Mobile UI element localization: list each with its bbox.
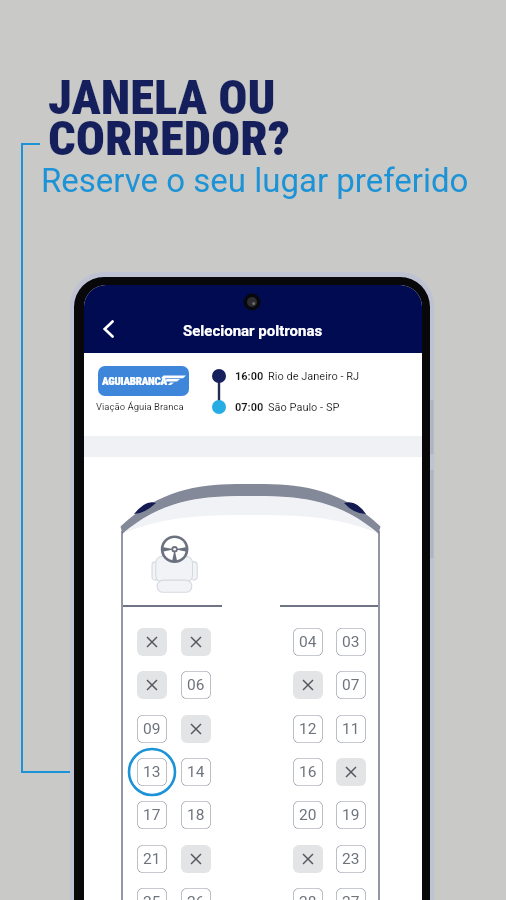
button[interactable]: 13 [137,758,167,786]
staticText: 16 [299,763,317,781]
button[interactable]: 14 [181,758,211,786]
staticText: 28 [299,893,317,900]
button[interactable]: 07 [336,671,366,699]
button[interactable]: 20 [293,801,323,829]
button[interactable]: 27 [336,888,366,900]
button[interactable]: 12 [293,715,323,743]
staticText: 26 [187,893,205,900]
staticText: Selecionar poltronas [183,322,323,340]
staticText: 04 [299,633,317,651]
staticText: 06 [187,676,205,694]
staticText: 13 [143,763,161,781]
button[interactable]: 04 [293,628,323,656]
button[interactable]: Poltrona indisponível [293,845,323,873]
staticText: Viação Águia Branca [96,401,184,412]
staticText: 07:00 [235,401,264,414]
staticText: 03 [342,633,360,651]
button[interactable]: Poltrona indisponível [293,671,323,699]
button[interactable]: 28 [293,888,323,900]
staticText: Reserve o seu lugar preferido [41,161,469,200]
staticText: AGUIABRANCA [102,375,167,388]
staticText: JANELA OU [48,69,276,126]
staticText: 21 [143,850,161,868]
staticText: São Paulo - SP [268,401,340,414]
staticText: 20 [299,806,317,824]
button[interactable]: 21 [137,845,167,873]
button[interactable]: 09 [137,715,167,743]
staticText: CORREDOR? [48,110,290,167]
button[interactable]: 11 [336,715,366,743]
button[interactable]: 25 [137,888,167,900]
button[interactable]: Poltrona indisponível [137,628,167,656]
staticText: 18 [187,806,205,824]
staticText: 14 [187,763,205,781]
button[interactable]: Poltrona indisponível [181,628,211,656]
button[interactable]: 06 [181,671,211,699]
button[interactable]: 03 [336,628,366,656]
staticText: 09 [143,720,161,738]
button[interactable]: 18 [181,801,211,829]
staticText: 25 [143,893,161,900]
button[interactable]: 26 [181,888,211,900]
button[interactable]: Voltar [88,308,130,350]
button[interactable]: 16 [293,758,323,786]
button[interactable]: 17 [137,801,167,829]
staticText: Rio de Janeiro - RJ [268,370,360,383]
staticText: 12 [299,720,317,738]
button[interactable]: Poltrona indisponível [336,758,366,786]
button[interactable]: 23 [336,845,366,873]
staticText: 17 [143,806,161,824]
button[interactable]: Poltrona indisponível [137,671,167,699]
staticText: 11 [342,720,360,738]
staticText: 16:00 [235,370,264,383]
staticText: 07 [342,676,360,694]
button[interactable]: Poltrona indisponível [181,715,211,743]
staticText: 27 [342,893,360,900]
button[interactable]: 19 [336,801,366,829]
button[interactable]: Poltrona indisponível [181,845,211,873]
staticText: 19 [342,806,360,824]
staticText: 23 [342,850,360,868]
